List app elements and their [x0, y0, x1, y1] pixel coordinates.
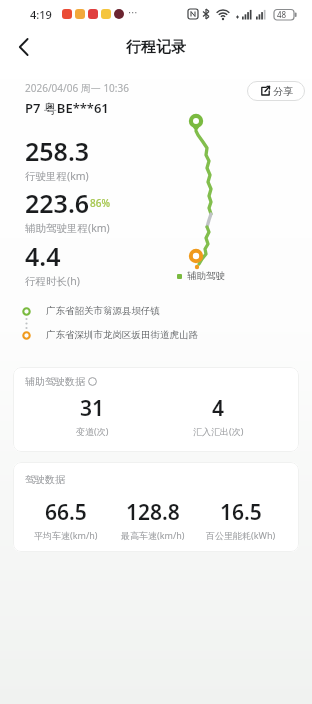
button[interactable]: 驾驶数据: [13, 462, 299, 552]
staticText: 258.3: [25, 134, 90, 168]
staticText: 4.4: [25, 239, 61, 273]
button[interactable]: 辅助驾驶数据: [13, 367, 299, 452]
staticText: 223.6: [25, 186, 90, 220]
staticText: 行驶里程(km): [25, 169, 89, 183]
staticText: 4: [212, 394, 225, 423]
staticText: 辅助驾驶数据: [25, 375, 85, 388]
button[interactable]: 广东省韶关市翁源县坝仔镇: [22, 305, 160, 317]
staticText: 汇入汇出(次): [193, 425, 244, 437]
staticText: 驾驶数据: [25, 473, 65, 486]
button[interactable]: 分享: [247, 81, 305, 101]
staticText: 广东省韶关市翁源县坝仔镇: [46, 305, 160, 317]
button[interactable]: 广东省深圳市龙岗区坂田街道虎山路: [22, 329, 198, 341]
staticText: 辅助驾驶: [187, 270, 225, 282]
staticText: 行程记录: [126, 38, 186, 57]
staticText: ⋯: [128, 7, 138, 19]
staticText: 辅助驾驶里程(km): [25, 221, 110, 235]
staticText: 行程时长(h): [25, 274, 80, 288]
staticText: 86%: [90, 196, 110, 210]
staticText: 最高车速(km/h): [121, 529, 185, 541]
staticText: 4:19: [30, 7, 52, 22]
staticText: 广东省深圳市龙岗区坂田街道虎山路: [46, 329, 198, 341]
staticText: P7 粤BE***61: [25, 99, 109, 117]
staticText: 128.8: [126, 498, 180, 527]
staticText: 平均车速(km/h): [34, 529, 98, 541]
staticText: 变道(次): [76, 425, 109, 437]
staticText: 16.5: [220, 498, 262, 527]
staticText: 31: [80, 394, 105, 423]
staticText: 分享: [273, 85, 293, 98]
staticText: 百公里能耗(kWh): [206, 529, 276, 541]
staticText: 66.5: [45, 498, 87, 527]
staticText: 2026/04/06 周一 10:36: [25, 81, 129, 95]
button[interactable]: [18, 39, 30, 55]
staticText: 48: [277, 9, 287, 20]
